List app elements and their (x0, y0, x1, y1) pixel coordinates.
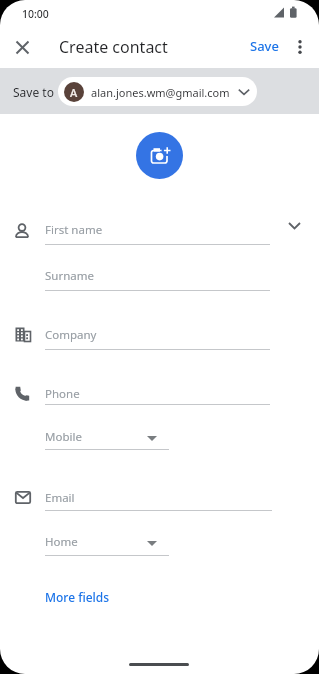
button[interactable]: More fields (40, 585, 118, 609)
button[interactable]: Save (243, 33, 285, 59)
staticText: First name (45, 222, 103, 238)
button[interactable]: Company (45, 326, 270, 344)
staticText: Create contact (59, 36, 168, 58)
staticText: Save to (13, 84, 54, 100)
staticText: Home (45, 534, 78, 550)
staticText: Phone (45, 386, 80, 402)
button[interactable]: First name (45, 221, 270, 239)
staticText: More fields (45, 589, 110, 605)
button[interactable] (287, 33, 313, 61)
staticText: 10:00 (22, 7, 49, 21)
button[interactable]: Surname (45, 267, 270, 285)
staticText: Company (45, 327, 97, 343)
button[interactable]: Home (45, 533, 270, 551)
staticText: Email (45, 490, 75, 506)
button[interactable]: Mobile (45, 428, 270, 446)
button[interactable]: Phone (45, 385, 270, 403)
staticText: alan.jones.wm@gmail.com (91, 85, 230, 100)
staticText: Mobile (45, 429, 82, 445)
button[interactable] (136, 132, 183, 179)
button[interactable]: Email (45, 489, 270, 507)
staticText: Surname (45, 268, 94, 284)
staticText: Save (250, 37, 279, 55)
staticText: A (70, 85, 78, 100)
button[interactable] (2, 33, 42, 61)
button[interactable]: A (58, 77, 257, 106)
